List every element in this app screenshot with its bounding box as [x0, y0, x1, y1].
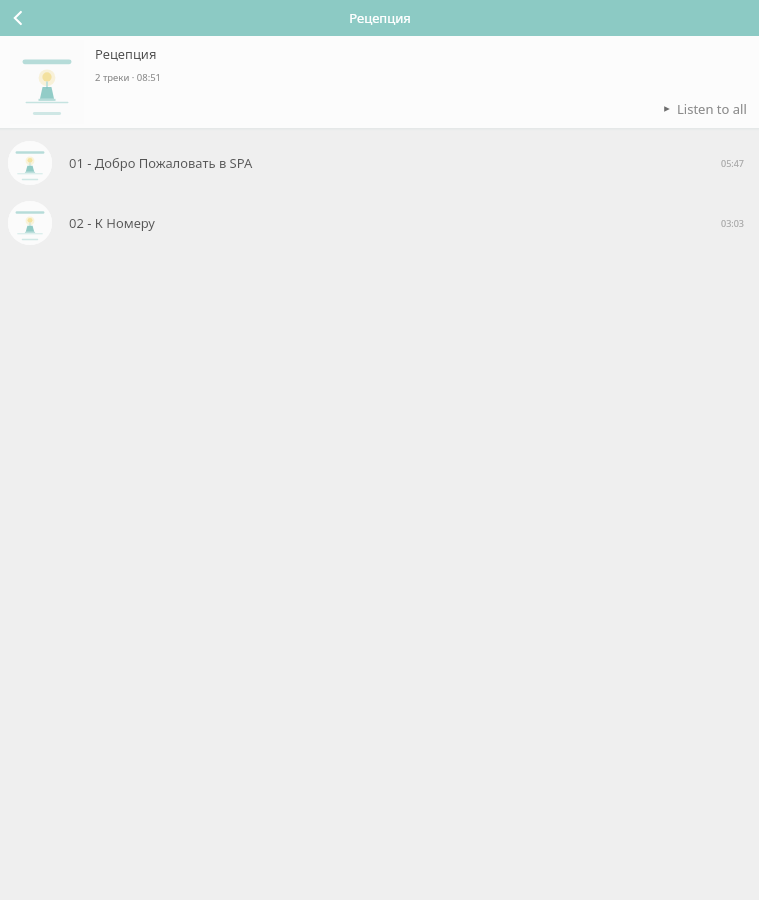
button[interactable]: Back	[0, 0, 36, 36]
staticText: 05:47	[721, 157, 745, 169]
button[interactable]: 01 - Добро Пожаловать в SPA	[0, 133, 759, 193]
button[interactable]: Listen to all	[657, 96, 753, 122]
staticText: 03:03	[721, 217, 745, 229]
button[interactable]: 02 - К Номеру	[0, 193, 759, 253]
staticText: Рецепция	[95, 45, 157, 63]
staticText: Listen to all	[677, 100, 747, 118]
staticText: 2 треки · 08:51	[95, 71, 162, 84]
staticText: 02 - К Номеру	[69, 214, 155, 232]
staticText: Рецепция	[349, 9, 411, 27]
staticText: 01 - Добро Пожаловать в SPA	[69, 154, 253, 172]
